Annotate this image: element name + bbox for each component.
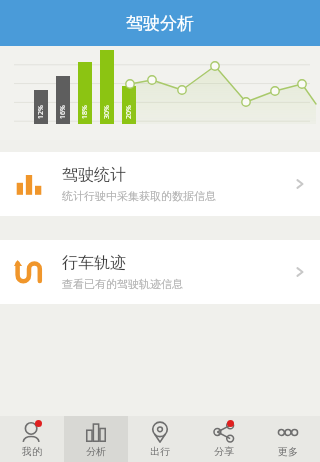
staticText: 分析 (86, 445, 106, 458)
staticText: 16% (58, 105, 68, 119)
button[interactable]: 我的 (0, 416, 64, 462)
staticText: 12% (36, 105, 46, 119)
staticText: 统计行驶中采集获取的数据信息 (62, 189, 216, 203)
button[interactable]: 更多 (256, 416, 320, 462)
staticText: 更多 (278, 445, 298, 458)
staticText: 20% (124, 105, 134, 119)
staticText: 分享 (214, 445, 234, 458)
staticText: 出行 (150, 445, 170, 458)
staticText: 驾驶统计 (62, 165, 126, 185)
staticText: 行车轨迹 (62, 253, 126, 273)
staticText: 我的 (22, 445, 42, 458)
button[interactable]: 行车轨迹 (0, 240, 320, 304)
staticText: 18% (80, 105, 90, 119)
button[interactable]: 出行 (128, 416, 192, 462)
staticText: 驾驶分析 (126, 13, 194, 34)
button[interactable]: 分析 (64, 416, 128, 462)
button[interactable]: 驾驶统计 (0, 152, 320, 216)
button[interactable]: 分享 (192, 416, 256, 462)
staticText: 查看已有的驾驶轨迹信息 (62, 277, 183, 291)
staticText: 30% (102, 105, 112, 119)
